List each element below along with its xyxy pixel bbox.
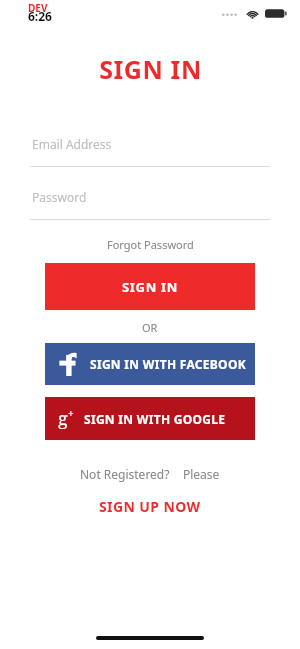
staticText: 6:26	[28, 8, 52, 24]
button[interactable]: Forgot Password	[101, 234, 200, 255]
staticText: Password	[32, 189, 87, 205]
staticText: Please	[183, 466, 220, 482]
staticText: Email Address	[32, 136, 112, 152]
button[interactable]: Google Plus	[45, 397, 255, 440]
button[interactable]: Password	[30, 189, 270, 220]
other: Google Plus	[58, 406, 74, 431]
staticText: DEV	[28, 1, 48, 15]
staticText: SIGN IN WITH GOOGLE	[84, 411, 226, 427]
other: Facebook	[59, 352, 77, 376]
staticText: g	[58, 406, 68, 431]
staticText: +	[68, 407, 74, 421]
staticText: Not Registered?	[80, 466, 170, 482]
staticText: SIGN IN	[122, 278, 179, 296]
staticText: Forgot Password	[107, 237, 194, 252]
button[interactable]: SIGN IN	[45, 263, 255, 310]
staticText: OR	[142, 320, 158, 335]
staticText: SIGN UP NOW	[99, 497, 201, 516]
staticText: SIGN IN WITH FACEBOOK	[90, 356, 246, 372]
staticText: SIGN IN	[99, 52, 202, 86]
button[interactable]: Email Address	[30, 136, 270, 167]
button[interactable]: SIGN UP NOW	[91, 494, 209, 519]
button[interactable]: Facebook	[45, 343, 255, 385]
